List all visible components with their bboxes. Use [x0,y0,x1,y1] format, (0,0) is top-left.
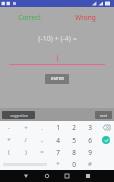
button[interactable]: 6 [82,134,98,146]
button[interactable]: ) [17,146,34,158]
button[interactable]: Wrong [75,13,96,22]
staticText: 7 [56,148,60,157]
button[interactable]: * [50,158,66,170]
button[interactable]: 8 [66,146,82,158]
button[interactable]: 7 [50,146,66,158]
button[interactable]: 9 [82,146,98,158]
button[interactable]: 3 [82,121,98,134]
staticText: 3 [88,123,92,132]
button[interactable]: # [82,158,98,170]
staticText: 8 [72,148,76,157]
staticText: 2 [72,123,76,132]
staticText: * [7,136,11,144]
staticText: 9 [88,148,92,157]
button[interactable]: suggestion [2,111,35,119]
button[interactable]: Correct [18,13,41,22]
staticText: next [100,113,107,118]
button[interactable]: Space [0,158,50,170]
button[interactable]: Enter [98,134,114,146]
staticText: + [24,124,28,132]
button[interactable]: * [0,134,17,146]
button[interactable]: = [34,146,50,158]
staticText: 5 [72,136,76,145]
button[interactable]: Recents [61,170,73,182]
staticText: - [8,124,10,132]
button[interactable]: 2 [66,121,82,134]
button[interactable] [9,54,105,65]
staticText: # [88,160,92,168]
button[interactable]: next [95,111,112,119]
button[interactable]: - [0,121,17,134]
button[interactable]: Keyboard [82,170,94,182]
button[interactable]: Back [20,170,32,182]
staticText: ENTER [51,76,64,82]
button[interactable]: Backspace [98,121,114,134]
staticText: ) [25,148,27,156]
staticText: 4 [56,136,60,145]
button[interactable]: 1 [50,121,66,134]
staticText: ( [8,148,10,156]
button[interactable]: , [34,134,50,146]
staticText: Correct [18,13,41,22]
staticText: , [41,136,43,144]
staticText: Wrong [75,13,96,22]
button[interactable]: 0 [66,158,82,170]
button[interactable]: ENTER [45,74,69,84]
button[interactable]: 4 [50,134,66,146]
staticText: * [56,160,60,168]
button[interactable]: + [17,121,34,134]
staticText: . [41,124,43,132]
button[interactable]: 5 [66,134,82,146]
staticText: suggestion [10,113,28,118]
button[interactable]: Home [41,170,53,182]
staticText: / [24,136,27,144]
staticText: 6 [88,136,92,145]
button[interactable]: / [17,134,34,146]
staticText: 0 [72,160,76,169]
button[interactable]: ( [0,146,17,158]
staticText: 1 [56,123,60,132]
staticText: = [40,148,44,156]
staticText: (-10) + (-4) = [38,34,77,44]
